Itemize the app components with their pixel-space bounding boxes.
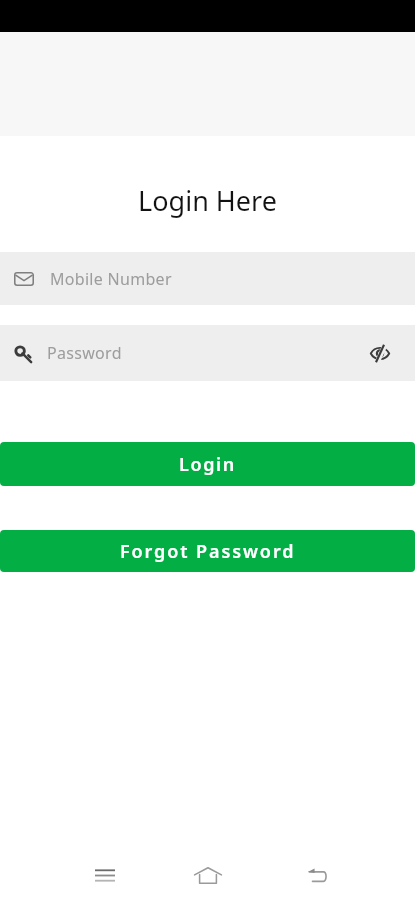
button[interactable]: Back xyxy=(293,850,341,898)
button[interactable]: Login xyxy=(0,442,415,486)
button[interactable]: Mobile Number xyxy=(0,252,415,305)
staticText: Forgot Password xyxy=(120,539,296,564)
button[interactable]: Home xyxy=(184,852,232,900)
staticText: Login Here xyxy=(0,182,415,219)
button[interactable]: Show password xyxy=(358,331,402,375)
button[interactable]: Password xyxy=(0,325,415,381)
staticText: Mobile Number xyxy=(50,268,172,290)
staticText: Login xyxy=(179,452,236,477)
staticText: Password xyxy=(47,342,122,364)
button[interactable]: Recent apps xyxy=(81,851,129,899)
button[interactable]: Forgot Password xyxy=(0,530,415,572)
